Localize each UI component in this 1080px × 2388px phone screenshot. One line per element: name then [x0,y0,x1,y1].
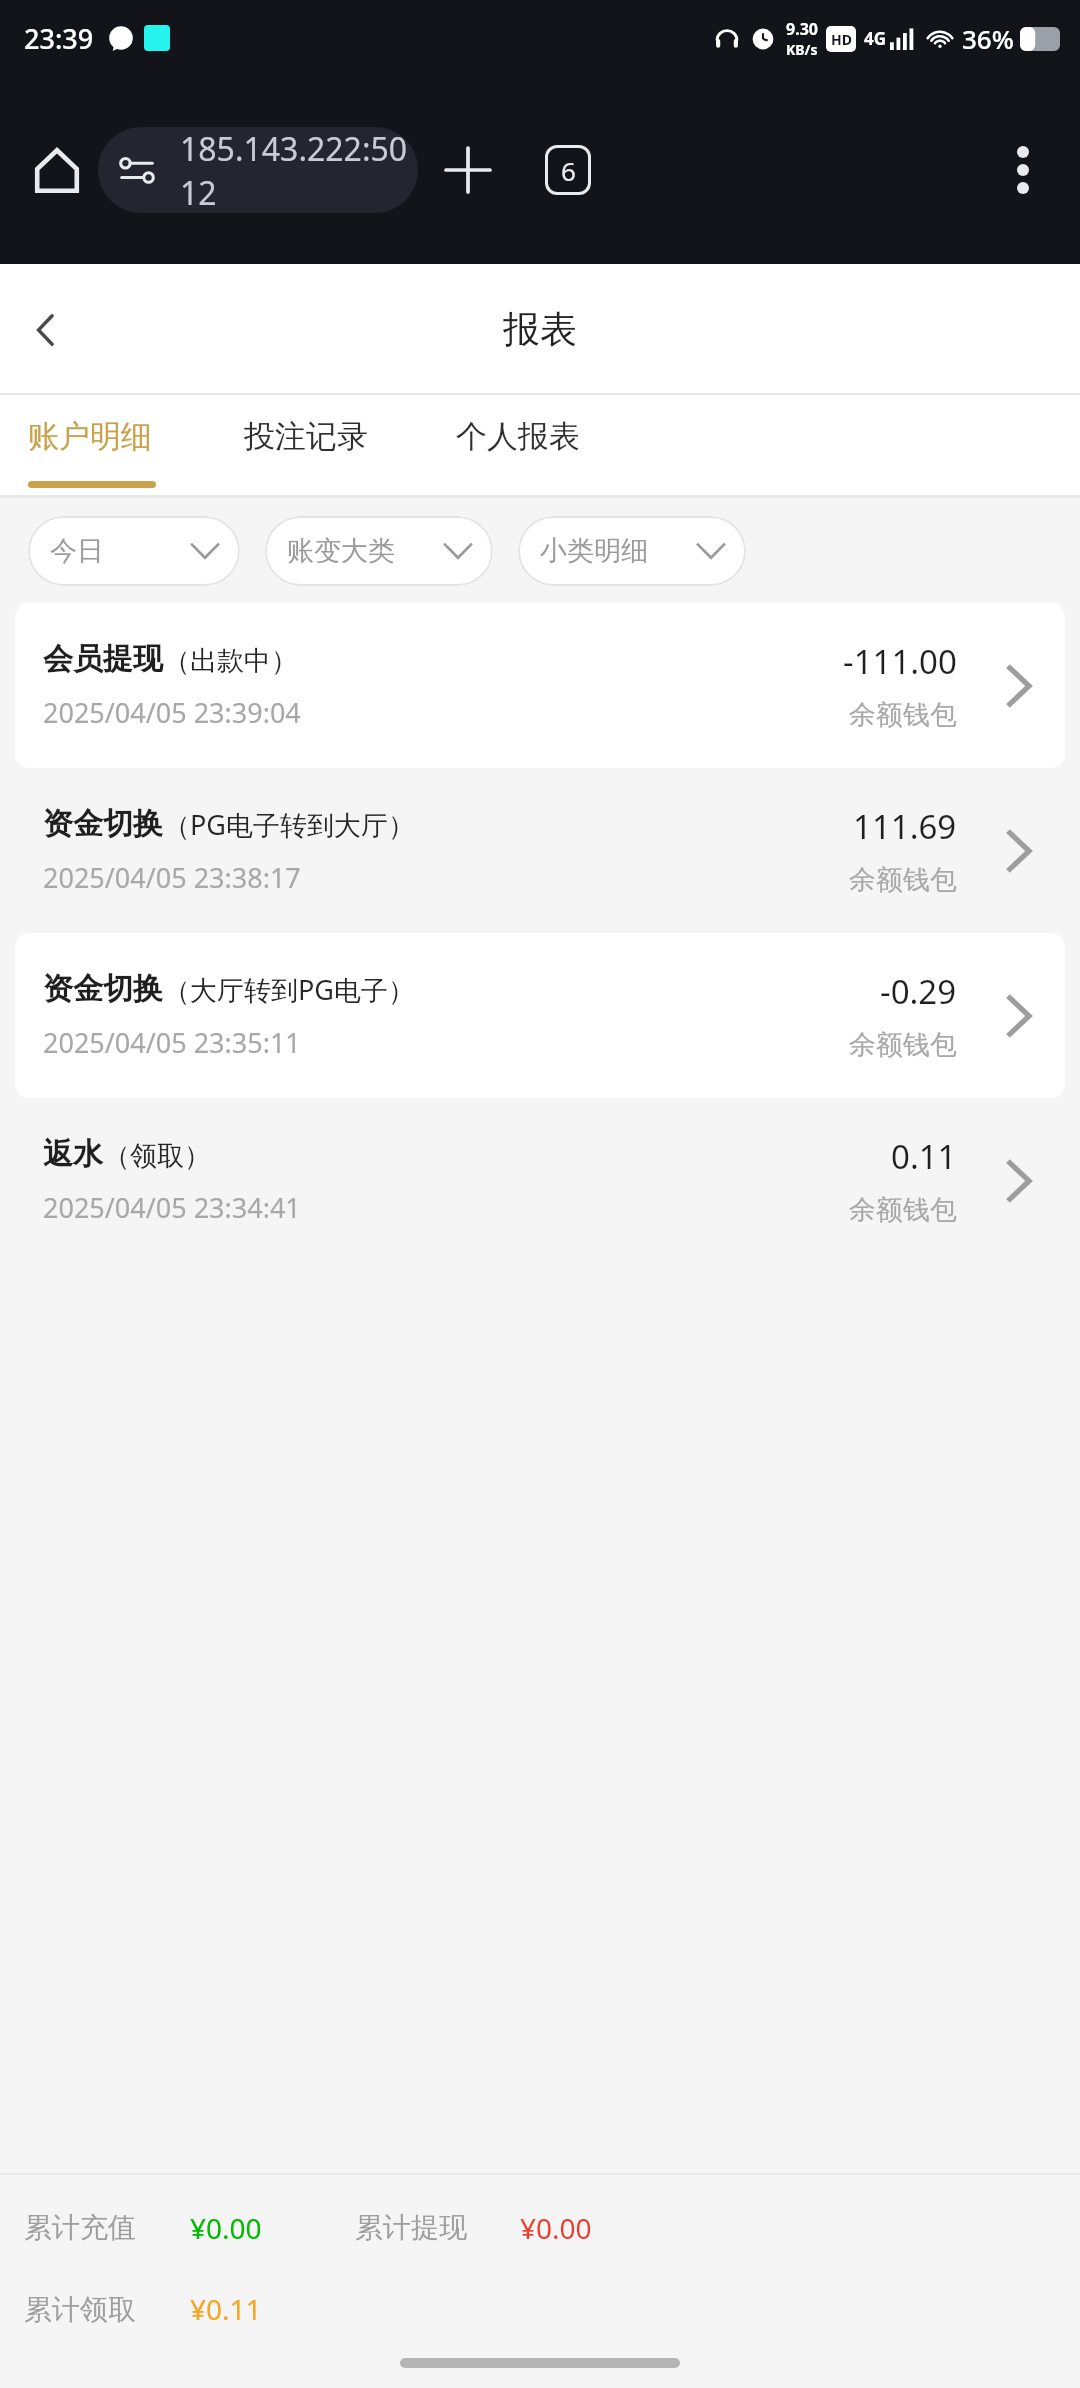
staticText: 会员提现 [43,640,163,678]
staticText: 4G [864,27,887,50]
button[interactable]: 个人报表 [456,395,580,498]
staticText: ¥0.11 [190,2290,262,2328]
staticText: 报表 [503,306,577,353]
staticText: 余额钱包 [849,1028,957,1062]
staticText: 小类明细 [540,534,648,568]
button[interactable]: 今日 [28,516,240,586]
staticText: （大厅转到PG电子） [163,971,415,1008]
staticText: 2025/04/05 23:38:17 [43,859,301,896]
staticText: 累计领取 [24,2292,136,2327]
staticText: 6 [561,153,576,188]
staticText: 个人报表 [456,417,580,456]
button[interactable]: Back [6,290,86,370]
staticText: 9.30 [786,18,818,40]
staticText: 资金切换 [43,970,163,1008]
staticText: 累计提现 [355,2210,467,2245]
staticText: 余额钱包 [849,863,957,897]
staticText: 今日 [50,534,104,568]
staticText: 余额钱包 [849,1193,957,1227]
staticText: KB/s [786,40,818,59]
staticText: ¥0.00 [190,2209,262,2247]
staticText: 185.143.222:5012 [180,127,418,213]
button[interactable]: 资金切换 [15,933,1065,1098]
staticText: （领取） [103,1139,211,1173]
button[interactable]: More options [980,127,1066,213]
staticText: 2025/04/05 23:34:41 [43,1189,301,1226]
button[interactable]: Home [20,133,94,207]
button[interactable]: 资金切换 [15,768,1065,933]
staticText: -111.00 [843,639,957,684]
staticText: 余额钱包 [849,698,957,732]
staticText: 0.11 [891,1134,957,1179]
staticText: HD [831,30,852,49]
staticText: 返水 [43,1135,103,1173]
button[interactable]: 185.143.222:5012 [98,127,418,213]
staticText: 36% [962,21,1014,56]
staticText: 资金切换 [43,805,163,843]
button[interactable]: New tab [425,127,511,213]
staticText: （出款中） [163,644,298,678]
button[interactable]: 小类明细 [518,516,746,586]
staticText: 累计充值 [24,2210,136,2245]
staticText: 2025/04/05 23:35:11 [43,1024,301,1061]
button[interactable]: 返水 [15,1098,1065,1263]
staticText: 23:39 [24,20,94,57]
staticText: 账户明细 [28,417,152,456]
button[interactable]: 会员提现 [15,603,1065,768]
staticText: （PG电子转到大厅） [163,806,415,843]
staticText: 投注记录 [244,417,368,456]
staticText: 2025/04/05 23:39:04 [43,694,301,731]
button[interactable]: 账户明细 [28,395,156,498]
staticText: 111.69 [853,804,957,849]
button[interactable]: 账变大类 [265,516,493,586]
button[interactable]: Tabs [525,127,611,213]
staticText: -0.29 [880,969,957,1014]
staticText: 账变大类 [287,534,395,568]
button[interactable]: 投注记录 [244,395,368,498]
staticText: ¥0.00 [520,2209,592,2247]
